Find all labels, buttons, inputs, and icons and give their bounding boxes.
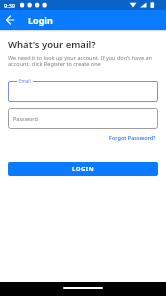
staticText: Email [19, 78, 31, 84]
staticText: LOGIN [72, 165, 95, 173]
staticText: Password [13, 115, 38, 122]
button[interactable]: Password [8, 108, 158, 129]
button[interactable] [8, 81, 158, 102]
staticText: We need it to look up your account. If y… [8, 54, 152, 68]
staticText: What's your email? [8, 38, 96, 51]
button[interactable]: Forgot Password? [107, 132, 158, 143]
button[interactable]: LOGIN [8, 162, 158, 176]
button[interactable] [0, 10, 20, 30]
staticText: 9:39 [4, 2, 15, 9]
staticText: Login [28, 14, 53, 26]
